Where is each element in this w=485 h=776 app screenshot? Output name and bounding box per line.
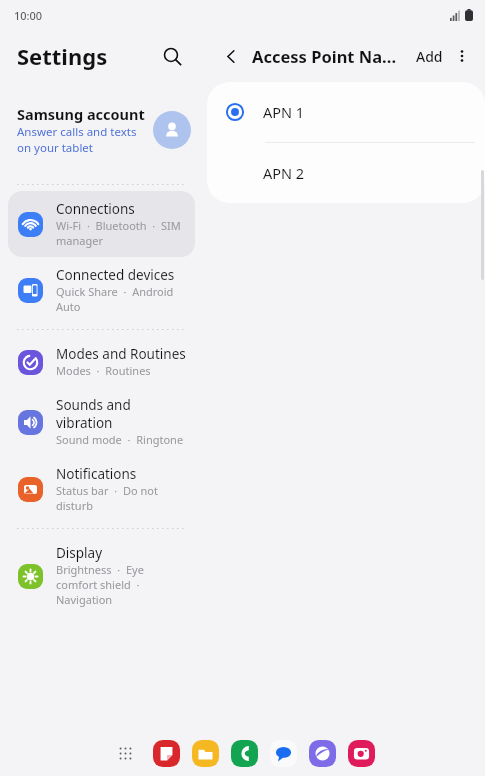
staticText: Answer calls and texts on your tablet (17, 124, 147, 156)
button[interactable]: More options (447, 41, 477, 71)
staticText: Quick Share · Android Auto (56, 284, 187, 314)
button[interactable]: Add (412, 43, 447, 70)
staticText: Modes · Routines (56, 363, 151, 378)
staticText: Access Point Na... (252, 45, 397, 67)
button[interactable]: Back (217, 42, 245, 70)
staticText: Notifications (56, 465, 137, 483)
button[interactable]: Apps (110, 738, 140, 768)
button[interactable]: Sounds and vibration (8, 387, 195, 456)
button[interactable]: messages (269, 739, 297, 767)
staticText: Sound mode · Ringtone (56, 432, 184, 447)
staticText: Modes and Routines (56, 345, 186, 363)
button[interactable]: internet (308, 739, 336, 767)
staticText: 10:00 (14, 8, 43, 23)
staticText: Connected devices (56, 266, 175, 284)
staticText: Sounds and vibration (56, 396, 187, 432)
button[interactable]: phone (230, 739, 258, 767)
staticText: Display (56, 544, 103, 562)
button[interactable]: Display (8, 535, 195, 616)
button[interactable]: APN 2 (207, 143, 485, 203)
staticText: Connections (56, 200, 135, 218)
staticText: Wi-Fi · Bluetooth · SIM manager (56, 218, 187, 248)
button[interactable]: Samsung account (0, 82, 203, 178)
button[interactable]: Search (155, 39, 189, 73)
staticText: APN 2 (263, 163, 305, 183)
button[interactable]: Notifications (8, 456, 195, 522)
button[interactable]: Connections (8, 191, 195, 257)
staticText: APN 1 (263, 102, 305, 122)
button[interactable]: notes (152, 739, 180, 767)
staticText: Samsung account (17, 104, 145, 124)
staticText: Brightness · Eye comfort shield · Naviga… (56, 562, 187, 607)
button[interactable]: Modes and Routines (8, 336, 195, 387)
staticText: Add (416, 47, 443, 66)
staticText: Settings (17, 41, 108, 71)
staticText: Status bar · Do not disturb (56, 483, 187, 513)
button[interactable]: Connected devices (8, 257, 195, 323)
button[interactable]: camera (347, 739, 375, 767)
button[interactable]: APN 1 (207, 82, 485, 142)
button[interactable]: files (191, 739, 219, 767)
